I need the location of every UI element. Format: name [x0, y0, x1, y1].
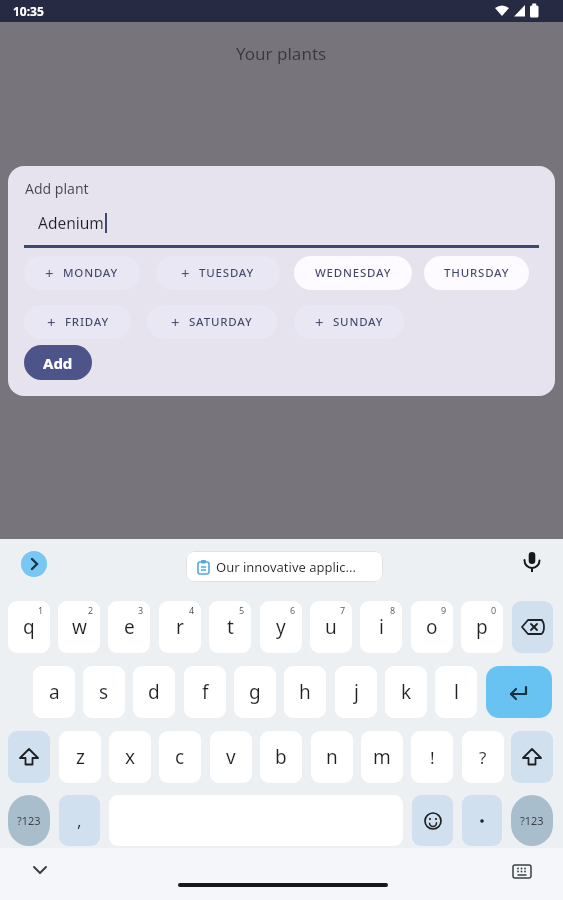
button[interactable]: r — [159, 601, 201, 653]
button[interactable] — [412, 795, 453, 846]
staticText: Your plants — [236, 42, 327, 65]
button[interactable]: ?123 — [8, 795, 50, 846]
button[interactable]: + — [24, 305, 131, 339]
button[interactable]: w — [58, 601, 100, 653]
button[interactable]: z — [59, 731, 101, 783]
button[interactable]: y — [260, 601, 302, 653]
staticText: SUNDAY — [333, 314, 384, 330]
staticText: l — [454, 679, 459, 705]
button[interactable]: l — [435, 666, 477, 718]
button[interactable]: p — [461, 601, 503, 653]
staticText: MONDAY — [63, 265, 119, 281]
button[interactable] — [511, 731, 553, 783]
button[interactable]: k — [385, 666, 427, 718]
button[interactable]: Our innovative applic... — [186, 551, 383, 582]
staticText: Adenium — [38, 212, 104, 233]
staticText: 6 — [290, 604, 296, 616]
staticText: 3 — [138, 604, 144, 616]
staticText: ? — [479, 746, 487, 769]
button[interactable]: m — [361, 731, 403, 783]
staticText: + — [45, 263, 54, 283]
staticText: 2 — [88, 604, 94, 616]
staticText: e — [124, 614, 135, 640]
button[interactable] — [524, 552, 540, 576]
button[interactable]: i — [360, 601, 402, 653]
button[interactable]: THURSDAY — [424, 256, 529, 290]
staticText: t — [227, 614, 234, 640]
staticText: g — [249, 679, 261, 705]
button[interactable]: + — [294, 305, 404, 339]
button[interactable]: a — [33, 666, 75, 718]
button[interactable]: b — [260, 731, 302, 783]
button[interactable] — [462, 795, 502, 846]
button[interactable]: f — [184, 666, 226, 718]
staticText: WEDNESDAY — [315, 265, 392, 281]
staticText: Add — [43, 353, 73, 373]
button[interactable]: + — [147, 305, 277, 339]
staticText: + — [171, 312, 180, 332]
staticText: 5 — [239, 604, 245, 616]
button[interactable]: Add — [24, 345, 92, 380]
button[interactable]: s — [83, 666, 125, 718]
staticText: w — [72, 614, 87, 640]
button[interactable] — [33, 866, 47, 875]
staticText: ?123 — [17, 813, 41, 828]
staticText: d — [148, 679, 160, 705]
staticText: 8 — [390, 604, 396, 616]
staticText: j — [354, 679, 359, 705]
button[interactable]: n — [311, 731, 353, 783]
button[interactable]: o — [411, 601, 453, 653]
staticText: + — [47, 312, 56, 332]
button[interactable]: v — [210, 731, 252, 783]
button[interactable]: x — [109, 731, 151, 783]
staticText: a — [49, 679, 60, 705]
staticText: o — [426, 614, 438, 640]
staticText: i — [379, 614, 384, 640]
button[interactable]: WEDNESDAY — [294, 256, 412, 290]
button[interactable]: , — [59, 795, 100, 846]
button[interactable]: ! — [411, 731, 453, 783]
button[interactable]: + — [156, 256, 280, 290]
button[interactable] — [512, 601, 553, 653]
button[interactable]: u — [310, 601, 352, 653]
button[interactable]: e — [108, 601, 150, 653]
button[interactable]: ?123 — [511, 795, 553, 846]
button[interactable]: g — [234, 666, 276, 718]
button[interactable] — [8, 731, 50, 783]
staticText: y — [276, 614, 286, 640]
button[interactable]: j — [335, 666, 377, 718]
staticText: SATURDAY — [189, 314, 253, 330]
staticText: ! — [430, 746, 435, 769]
button[interactable]: c — [159, 731, 201, 783]
staticText: 0 — [491, 604, 497, 616]
button[interactable]: q — [8, 601, 50, 653]
staticText: 10:35 — [13, 3, 44, 19]
staticText: p — [476, 614, 488, 640]
staticText: z — [76, 744, 85, 770]
staticText: n — [326, 744, 338, 770]
staticText: 1 — [38, 604, 44, 616]
staticText: Our innovative applic... — [216, 558, 356, 576]
staticText: Add plant — [25, 179, 89, 198]
staticText: 9 — [441, 604, 447, 616]
staticText: ?123 — [520, 813, 544, 828]
button[interactable]: ? — [462, 731, 504, 783]
staticText: , — [77, 809, 82, 832]
staticText: FRIDAY — [65, 314, 109, 330]
button[interactable]: h — [284, 666, 326, 718]
button[interactable]: t — [209, 601, 251, 653]
staticText: 7 — [340, 604, 346, 616]
staticText: r — [176, 614, 184, 640]
staticText: TUESDAY — [199, 265, 255, 281]
button[interactable] — [21, 551, 47, 577]
button[interactable]: + — [24, 256, 140, 290]
staticText: u — [325, 614, 337, 640]
staticText: + — [315, 312, 324, 332]
button[interactable]: d — [133, 666, 175, 718]
staticText: x — [125, 744, 136, 770]
button[interactable] — [486, 666, 552, 718]
staticText: k — [401, 679, 412, 705]
staticText: 4 — [189, 604, 195, 616]
button[interactable] — [512, 864, 532, 879]
